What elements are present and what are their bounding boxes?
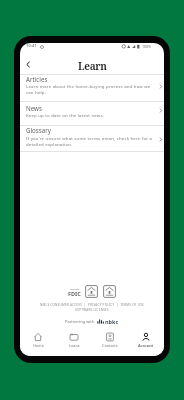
staticText: Learn more about the home-buying process… <box>26 83 151 95</box>
staticText: Home <box>33 343 44 348</box>
staticText: Keep up to date on the latest news. <box>26 112 105 118</box>
button[interactable] <box>20 75 164 101</box>
staticText: Loans <box>69 343 80 348</box>
button[interactable]: Contacts <box>92 329 128 356</box>
staticText: Member <box>70 287 80 290</box>
staticText: 100% <box>142 44 151 49</box>
button[interactable]: Account <box>128 329 164 356</box>
staticText: Account <box>138 343 154 348</box>
staticText: Glossary <box>26 126 51 134</box>
staticText: 10:41 <box>26 43 37 49</box>
button[interactable]: Home <box>20 329 56 356</box>
staticText: nbkc <box>105 318 119 325</box>
staticText: Contacts <box>102 343 118 348</box>
button[interactable] <box>21 57 35 71</box>
staticText: If you're unsure what some terms mean, c… <box>26 135 153 147</box>
button[interactable] <box>20 102 164 125</box>
staticText: News <box>26 104 42 112</box>
staticText: Partnering with <box>65 319 95 324</box>
button[interactable] <box>20 126 164 151</box>
staticText: SOFTWARE LICENSES <box>75 308 109 312</box>
staticText: NMLS CONSUMER ACCESS | PRIVACY POLICY | … <box>40 303 144 307</box>
button[interactable]: Loans <box>56 329 92 356</box>
staticText: Learn <box>78 59 107 73</box>
staticText: Articles <box>26 75 48 83</box>
staticText: FDIC <box>68 290 81 297</box>
